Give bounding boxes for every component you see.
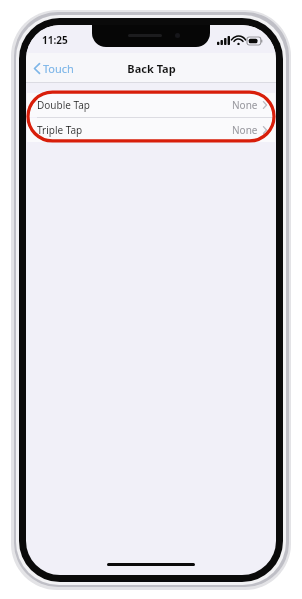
button[interactable]: Double Tap xyxy=(27,93,275,117)
other: Home indicator xyxy=(107,563,195,566)
staticText: Double Tap xyxy=(37,98,91,112)
staticText: Triple Tap xyxy=(37,123,83,137)
staticText: None xyxy=(232,98,258,112)
staticText: None xyxy=(232,123,258,137)
button[interactable]: Triple Tap xyxy=(27,118,275,142)
staticText: Touch xyxy=(43,61,74,76)
staticText: 11:25 xyxy=(42,33,68,47)
button[interactable]: Touch xyxy=(26,57,82,80)
staticText: Back Tap xyxy=(127,61,176,76)
